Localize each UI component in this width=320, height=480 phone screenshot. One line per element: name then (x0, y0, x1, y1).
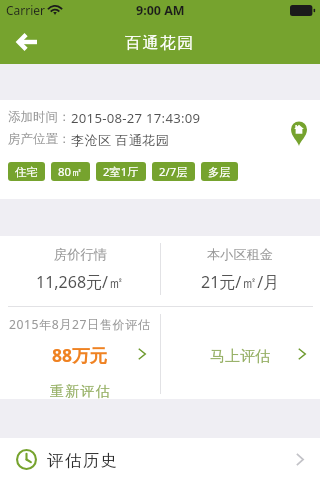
button[interactable]: 住宅 (8, 162, 45, 181)
staticText: 添加时间： (8, 109, 71, 125)
button[interactable]: Location on map (291, 121, 307, 146)
staticText: 80㎡ (58, 164, 83, 179)
button[interactable]: Back (6, 22, 46, 62)
staticText: 重新评估 (50, 383, 111, 401)
staticText: 2015年8月27日售价评估 (9, 316, 151, 333)
button[interactable]: 本小区租金 (160, 236, 320, 305)
staticText: 2/7层 (159, 164, 188, 179)
staticText: 房价行情 (54, 246, 107, 263)
staticText: 2室1厅 (103, 164, 139, 179)
button[interactable]: 2室1厅 (96, 162, 146, 181)
staticText: 多层 (208, 165, 231, 179)
staticText: 评估历史 (47, 450, 119, 471)
staticText: 住宅 (15, 165, 38, 179)
staticText: 21元/㎡/月 (201, 271, 280, 293)
staticText: 本小区租金 (207, 246, 273, 263)
staticText: 88万元 (52, 343, 108, 367)
staticText: 百通花园 (125, 33, 195, 53)
button[interactable]: 80㎡ (51, 162, 90, 181)
button[interactable]: 2015年8月27日售价评估 (0, 308, 160, 399)
button[interactable]: 马上评估 (160, 308, 320, 399)
button[interactable]: 多层 (201, 162, 238, 181)
staticText: 李沧区 百通花园 (71, 131, 170, 149)
staticText: 房产位置： (8, 131, 71, 147)
staticText: Carrier (6, 2, 46, 18)
staticText: 9:00 AM (136, 2, 185, 19)
button[interactable]: 房价行情 (0, 236, 160, 305)
staticText: 2015-08-27 17:43:09 (71, 109, 201, 127)
staticText: 马上评估 (210, 347, 270, 366)
button[interactable]: 评估历史 (0, 438, 320, 480)
button[interactable]: 2/7层 (152, 162, 195, 181)
staticText: 11,268元/㎡ (36, 271, 125, 293)
